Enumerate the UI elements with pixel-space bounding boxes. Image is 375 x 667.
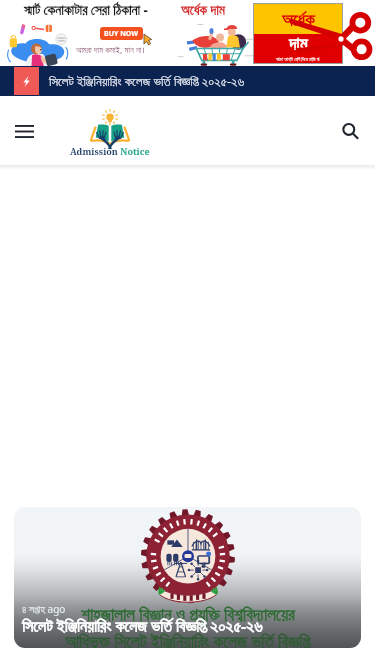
button[interactable]: Search: [331, 112, 369, 150]
staticText: আমরা দাম কমাই, মান না।: [76, 44, 145, 56]
staticText: ৪ সপ্তাহ ago: [22, 602, 66, 616]
staticText: Notice: [118, 145, 150, 157]
staticText: সিলেট ইঞ্জিনিয়ারিং কলেজ ভর্তি বিজ্ঞপ্তি…: [49, 72, 245, 90]
staticText: কারণ আপনি বেশি দিতে রাজি না: [276, 56, 320, 62]
staticText: Admission: [70, 145, 118, 157]
button[interactable]: সিলেট ইঞ্জিনিয়ারিং কলেজ ভর্তি বিজ্ঞপ্তি…: [0, 66, 375, 96]
staticText: অর্ধেক: [282, 12, 315, 29]
button[interactable]: Open navigation menu: [5, 112, 43, 150]
staticText: আধিভুক্ত সিলেট ইঞ্জিনিয়ারিং কলেজ ভর্তি …: [65, 630, 310, 648]
button[interactable]: শাহজালাল বিজ্ঞান ও প্রযুক্তি বিশ্ববিদ্যা…: [14, 507, 361, 648]
staticText: অর্ধেক দাম: [181, 1, 225, 19]
button[interactable]: Advertisement: [0, 0, 375, 66]
staticText: সিলেট ইঞ্জিনিয়ারিং কলেজ ভর্তি বিজ্ঞপ্তি…: [22, 615, 263, 637]
staticText: স্মার্ট কেনাকাটার সেরা ঠিকানা -: [24, 1, 152, 19]
staticText: BUY NOW: [104, 29, 139, 39]
staticText: দাম: [289, 36, 308, 53]
staticText: শাহজালাল বিজ্ঞান ও প্রযুক্তি বিশ্ববিদ্যা…: [81, 603, 295, 626]
